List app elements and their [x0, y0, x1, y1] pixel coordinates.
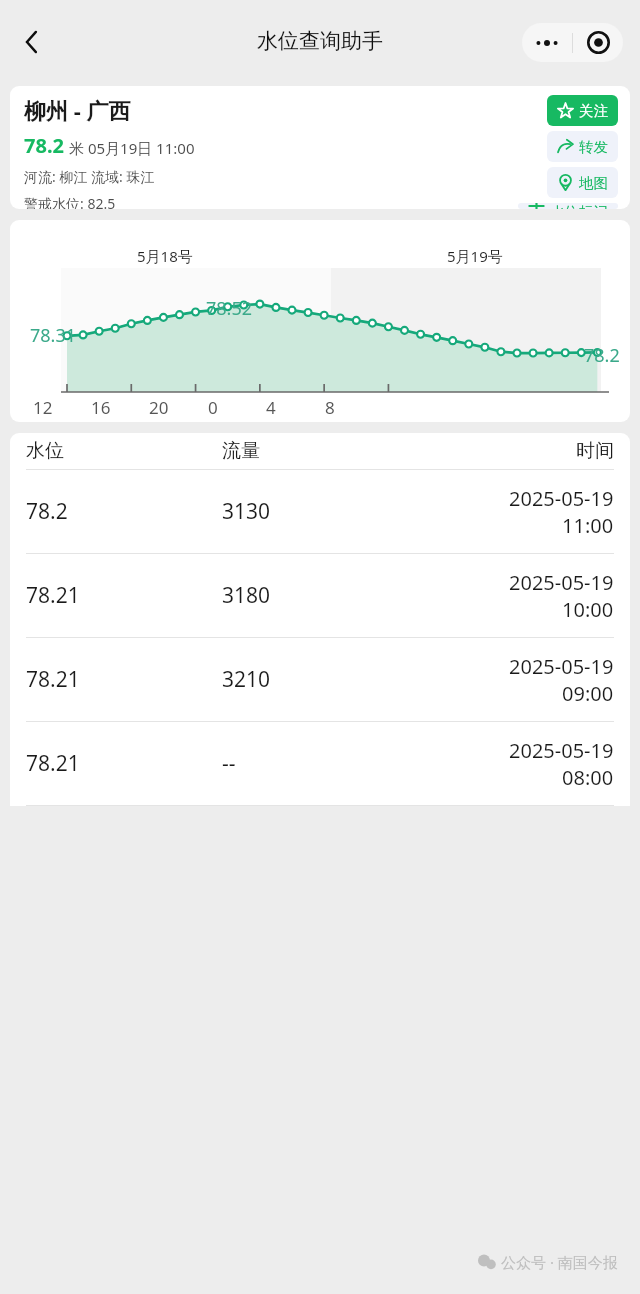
button[interactable]: More options: [522, 23, 572, 62]
staticText: 时间: [418, 439, 614, 463]
staticText: 水位标记: [550, 203, 608, 209]
staticText: 08:00: [562, 764, 614, 791]
staticText: 78.21: [26, 581, 222, 610]
staticText: 2025-05-19: [509, 569, 614, 596]
staticText: 关注: [579, 102, 608, 120]
staticText: 8: [325, 396, 335, 419]
staticText: 5月19号: [447, 246, 503, 266]
staticText: 09:00: [562, 680, 614, 707]
staticText: 5月18号: [137, 246, 193, 266]
button[interactable]: 78.2: [10, 470, 630, 553]
staticText: --: [222, 749, 418, 778]
staticText: 3210: [222, 665, 418, 694]
button[interactable]: Close: [573, 23, 623, 62]
staticText: 2025-05-19: [509, 737, 614, 764]
staticText: 公众号 · 南国今报: [501, 1252, 618, 1272]
staticText: 流量: [222, 439, 418, 463]
staticText: 警戒水位: 82.5: [24, 194, 116, 209]
button[interactable]: 78.21: [10, 554, 630, 637]
staticText: 3180: [222, 581, 418, 610]
button[interactable]: 地图: [547, 167, 618, 198]
staticText: 水位查询助手: [257, 28, 383, 54]
staticText: 78.2: [26, 497, 222, 526]
staticText: 柳州 - 广西: [24, 95, 131, 125]
button[interactable]: 78.21: [10, 638, 630, 721]
staticText: 10:00: [562, 596, 614, 623]
staticText: 2025-05-19: [509, 485, 614, 512]
staticText: 3130: [222, 497, 418, 526]
staticText: 20: [149, 396, 169, 419]
staticText: 78.31: [30, 323, 77, 348]
staticText: 78.52: [206, 296, 253, 321]
staticText: 河流: 柳江 流域: 珠江: [24, 167, 155, 186]
staticText: 0: [208, 396, 218, 419]
button[interactable]: 水位标记: [518, 203, 618, 209]
staticText: 米 05月19日 11:00: [69, 138, 195, 158]
staticText: 转发: [579, 138, 608, 156]
button[interactable]: Back: [8, 18, 56, 66]
staticText: 11:00: [562, 512, 614, 539]
staticText: 12: [33, 396, 53, 419]
staticText: 4: [266, 396, 276, 419]
staticText: 78.2: [24, 132, 64, 159]
staticText: 地图: [579, 174, 608, 192]
button[interactable]: 78.21: [10, 722, 630, 805]
button[interactable]: 转发: [547, 131, 618, 162]
staticText: 16: [91, 396, 111, 419]
button[interactable]: 关注: [547, 95, 618, 126]
staticText: 水位: [26, 439, 222, 463]
staticText: 78.2: [584, 343, 620, 368]
staticText: 2025-05-19: [509, 653, 614, 680]
staticText: 78.21: [26, 749, 222, 778]
staticText: 78.21: [26, 665, 222, 694]
